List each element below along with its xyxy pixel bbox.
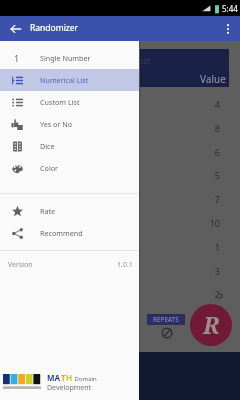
- staticText: Domain: [73, 375, 97, 383]
- button[interactable]: Yes or No: [0, 113, 139, 135]
- staticText: 8: [202, 122, 220, 134]
- button[interactable]: Dice: [0, 135, 139, 157]
- staticText: MA: [47, 372, 61, 383]
- staticText: 10: [202, 217, 220, 229]
- button[interactable]: Numerical List: [0, 69, 139, 91]
- button[interactable]: Recommend: [0, 222, 139, 244]
- staticText: REPEATS: [153, 315, 179, 324]
- staticText: 5:44: [222, 3, 238, 14]
- button[interactable]: 1: [0, 47, 139, 69]
- staticText: Value: [200, 72, 226, 86]
- staticText: Randomizer: [30, 22, 79, 34]
- staticText: Yes or No: [40, 119, 73, 129]
- button[interactable]: REPEATS: [147, 314, 185, 325]
- staticText: 1.0.1: [117, 260, 133, 270]
- staticText: 5: [202, 169, 220, 181]
- staticText: 6: [202, 146, 220, 158]
- staticText: T: [61, 372, 66, 383]
- staticText: Version: [8, 260, 33, 270]
- staticText: Development: [47, 383, 92, 393]
- staticText: 4: [202, 98, 220, 110]
- staticText: Rate: [40, 206, 56, 216]
- button[interactable]: No repeats: [161, 327, 173, 339]
- button[interactable]: Rate: [0, 200, 139, 222]
- staticText: Numerical List: [40, 75, 89, 85]
- staticText: 1: [14, 52, 20, 64]
- staticText: ist: [141, 55, 150, 66]
- staticText: Single Number: [40, 53, 91, 63]
- staticText: R: [203, 309, 220, 340]
- staticText: Recommend: [40, 228, 83, 238]
- staticText: 3: [202, 265, 220, 277]
- button[interactable]: Custom List: [0, 91, 139, 113]
- button[interactable]: Randomize: [190, 304, 232, 346]
- staticText: Dice: [40, 141, 55, 151]
- staticText: Color: [40, 163, 59, 173]
- staticText: 2: [202, 288, 220, 300]
- button[interactable]: Color: [0, 157, 139, 179]
- button[interactable]: Back: [5, 18, 27, 40]
- staticText: 7: [202, 193, 220, 205]
- staticText: 1: [202, 241, 220, 253]
- staticText: Custom List: [40, 97, 80, 107]
- staticText: H: [66, 372, 73, 383]
- button[interactable]: More options: [217, 18, 239, 40]
